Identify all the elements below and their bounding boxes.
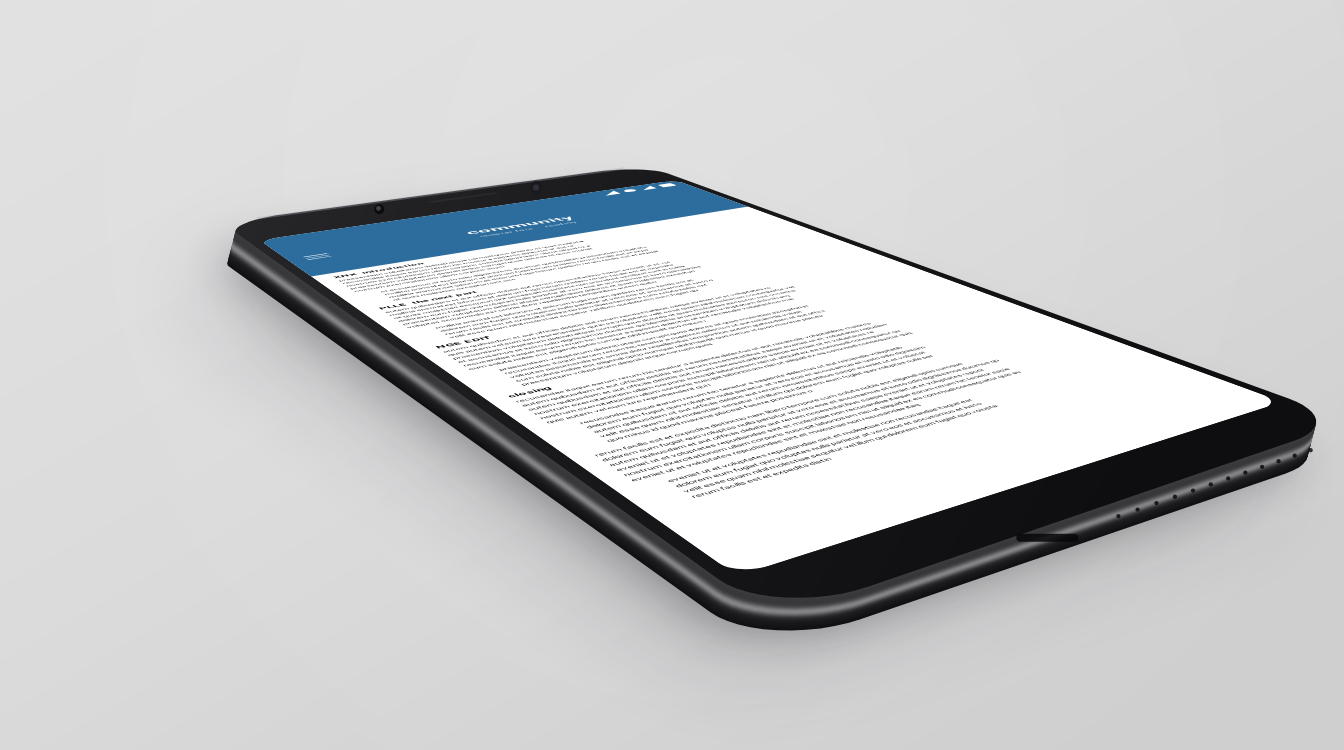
button[interactable]: Document reader app shown on a phone bbox=[0, 0, 1344, 750]
